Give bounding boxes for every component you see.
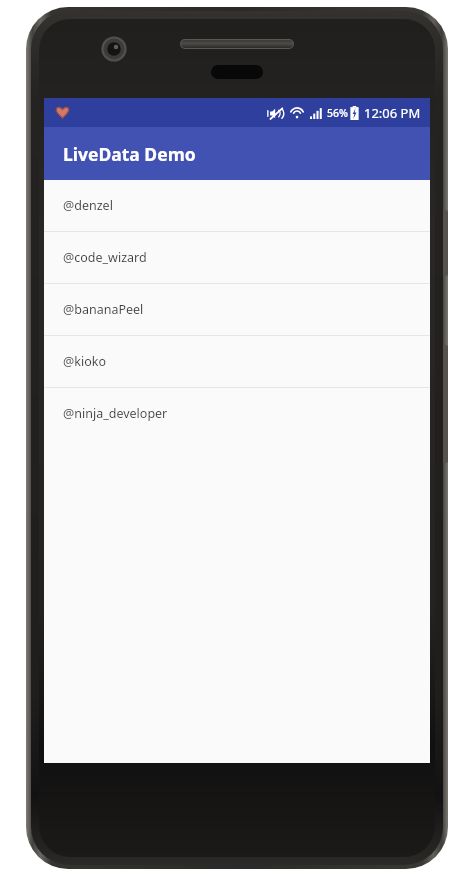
staticText: @ninja_developer bbox=[63, 405, 168, 422]
staticText: 12:06 PM bbox=[364, 104, 421, 122]
button[interactable]: @code_wizard bbox=[44, 232, 430, 283]
staticText: @denzel bbox=[63, 197, 113, 214]
staticText: @code_wizard bbox=[63, 249, 147, 266]
button[interactable]: @kioko bbox=[44, 336, 430, 387]
button[interactable]: @denzel bbox=[44, 180, 430, 231]
button[interactable]: @ninja_developer bbox=[44, 388, 430, 439]
button[interactable]: @bananaPeel bbox=[44, 284, 430, 335]
staticText: LiveData Demo bbox=[63, 142, 196, 166]
staticText: 56% bbox=[327, 106, 348, 120]
staticText: @bananaPeel bbox=[63, 301, 144, 318]
staticText: @kioko bbox=[63, 353, 106, 370]
other: Notification bbox=[56, 106, 69, 119]
